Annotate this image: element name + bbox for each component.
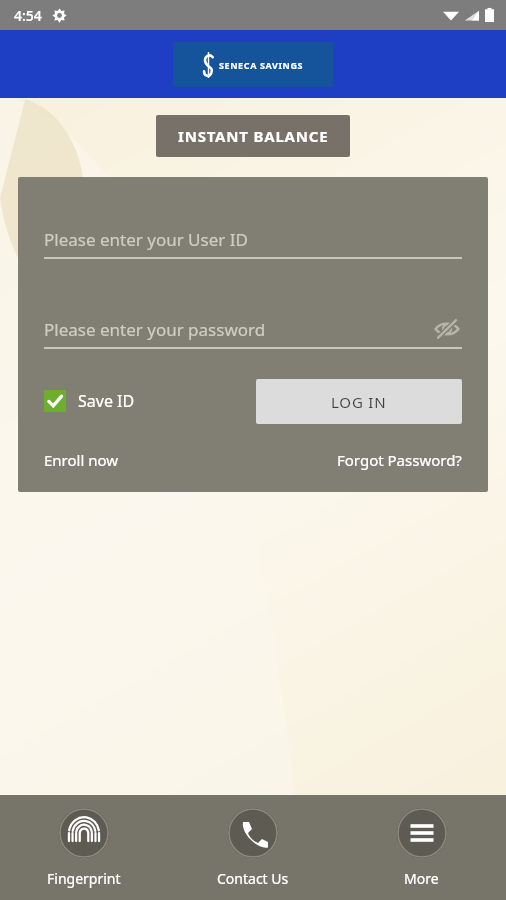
button[interactable]: Contact Us <box>168 800 337 896</box>
button[interactable]: LOG IN <box>256 379 462 424</box>
staticText: INSTANT BALANCE <box>178 126 329 146</box>
button[interactable]: Please enter your User ID <box>44 221 462 257</box>
staticText: LOG IN <box>331 392 387 412</box>
staticText: Please enter your password <box>44 318 266 341</box>
button[interactable]: Enroll now <box>44 446 119 474</box>
staticText: Forgot Password? <box>337 450 462 470</box>
staticText: Please enter your User ID <box>44 228 248 251</box>
button[interactable]: Please enter your password <box>44 311 462 347</box>
staticText: SENECA SAVINGS <box>219 59 304 71</box>
button[interactable]: Fingerprint <box>0 800 168 896</box>
staticText: 4:54 <box>14 6 42 25</box>
button[interactable]: Seneca Savings <box>173 42 333 87</box>
staticText: Save ID <box>78 390 135 412</box>
staticText: More <box>404 869 439 888</box>
button[interactable]: Save ID <box>44 390 135 412</box>
staticText: Enroll now <box>44 450 119 470</box>
button[interactable]: Show password <box>432 314 462 344</box>
button[interactable]: INSTANT BALANCE <box>156 115 350 157</box>
staticText: Contact Us <box>217 869 289 888</box>
button[interactable]: Forgot Password? <box>337 446 462 474</box>
button[interactable]: More <box>337 800 506 896</box>
staticText: Fingerprint <box>47 869 121 888</box>
